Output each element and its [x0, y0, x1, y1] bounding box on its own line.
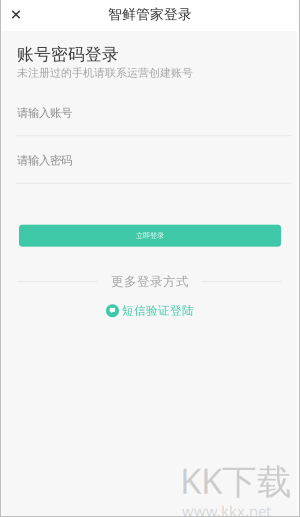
staticText: 短信验证登陆 [122, 303, 194, 318]
button[interactable]: 短信验证登陆 [106, 300, 194, 321]
staticText: KK下载 [180, 457, 292, 504]
staticText: 请输入密码 [17, 153, 72, 168]
staticText: 未注册过的手机请联系运营创建账号 [17, 66, 193, 80]
staticText: 智鲜管家登录 [108, 6, 192, 23]
staticText: 立即登录 [136, 231, 164, 240]
button[interactable]: 立即登录 [19, 225, 281, 247]
staticText: 账号密码登录 [17, 44, 119, 65]
button[interactable]: Close [3, 0, 29, 31]
staticText: www.kkx.net [182, 501, 271, 517]
staticText: 更多登录方式 [111, 274, 189, 289]
staticText: 请输入账号 [17, 106, 72, 120]
